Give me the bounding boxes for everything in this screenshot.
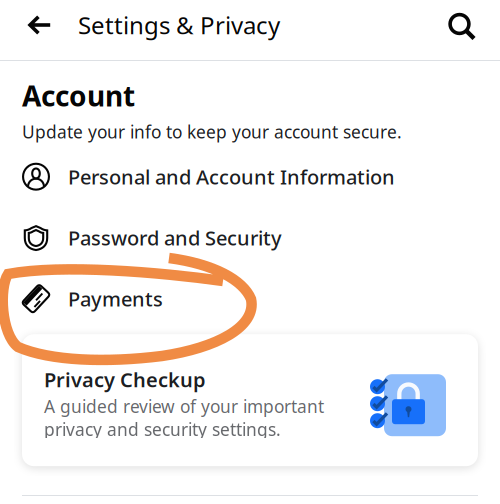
button[interactable]: Back	[21, 3, 59, 47]
button[interactable]: Payments	[0, 268, 500, 329]
staticText: Payments	[68, 285, 163, 312]
button[interactable]: Password and Security	[0, 207, 500, 268]
staticText: Privacy Checkup	[44, 366, 206, 393]
staticText: Update your info to keep your account se…	[22, 120, 402, 143]
button[interactable]: Search	[443, 6, 483, 50]
staticText: A guided review of your important privac…	[44, 395, 324, 441]
button[interactable]: Personal and Account Information	[0, 146, 500, 207]
staticText: Personal and Account Information	[68, 163, 395, 190]
staticText: Password and Security	[68, 224, 282, 251]
staticText: Settings & Privacy	[78, 9, 280, 41]
staticText: Account	[22, 77, 135, 114]
button[interactable]: Privacy Checkup	[22, 334, 478, 466]
